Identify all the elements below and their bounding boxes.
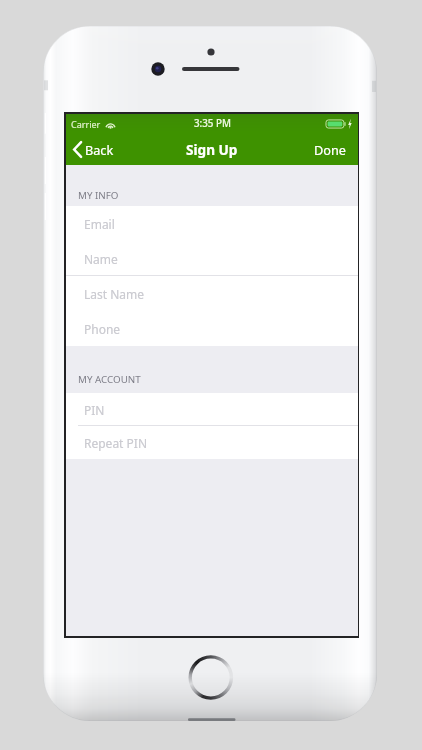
staticText: Email bbox=[84, 216, 115, 232]
button[interactable]: PIN bbox=[66, 393, 358, 426]
staticText: Phone bbox=[84, 321, 121, 337]
button[interactable]: Repeat PIN bbox=[66, 426, 358, 459]
staticText: Repeat PIN bbox=[84, 435, 148, 451]
staticText: MY ACCOUNT bbox=[78, 373, 141, 386]
button[interactable]: Last Name bbox=[66, 276, 358, 311]
button[interactable]: Back bbox=[66, 137, 124, 162]
staticText: MY INFO bbox=[78, 189, 119, 202]
staticText: PIN bbox=[84, 402, 105, 418]
button[interactable]: Email bbox=[66, 206, 358, 241]
button[interactable]: Phone bbox=[66, 311, 358, 346]
staticText: 3:35 PM bbox=[194, 117, 231, 130]
staticText: Done bbox=[314, 141, 346, 158]
staticText: Last Name bbox=[84, 286, 145, 302]
staticText: Sign Up bbox=[186, 140, 238, 159]
staticText: Carrier bbox=[71, 118, 101, 130]
button[interactable]: Name bbox=[66, 241, 358, 276]
staticText: Name bbox=[84, 251, 118, 267]
staticText: Back bbox=[85, 141, 114, 158]
button[interactable]: Done bbox=[302, 137, 358, 162]
